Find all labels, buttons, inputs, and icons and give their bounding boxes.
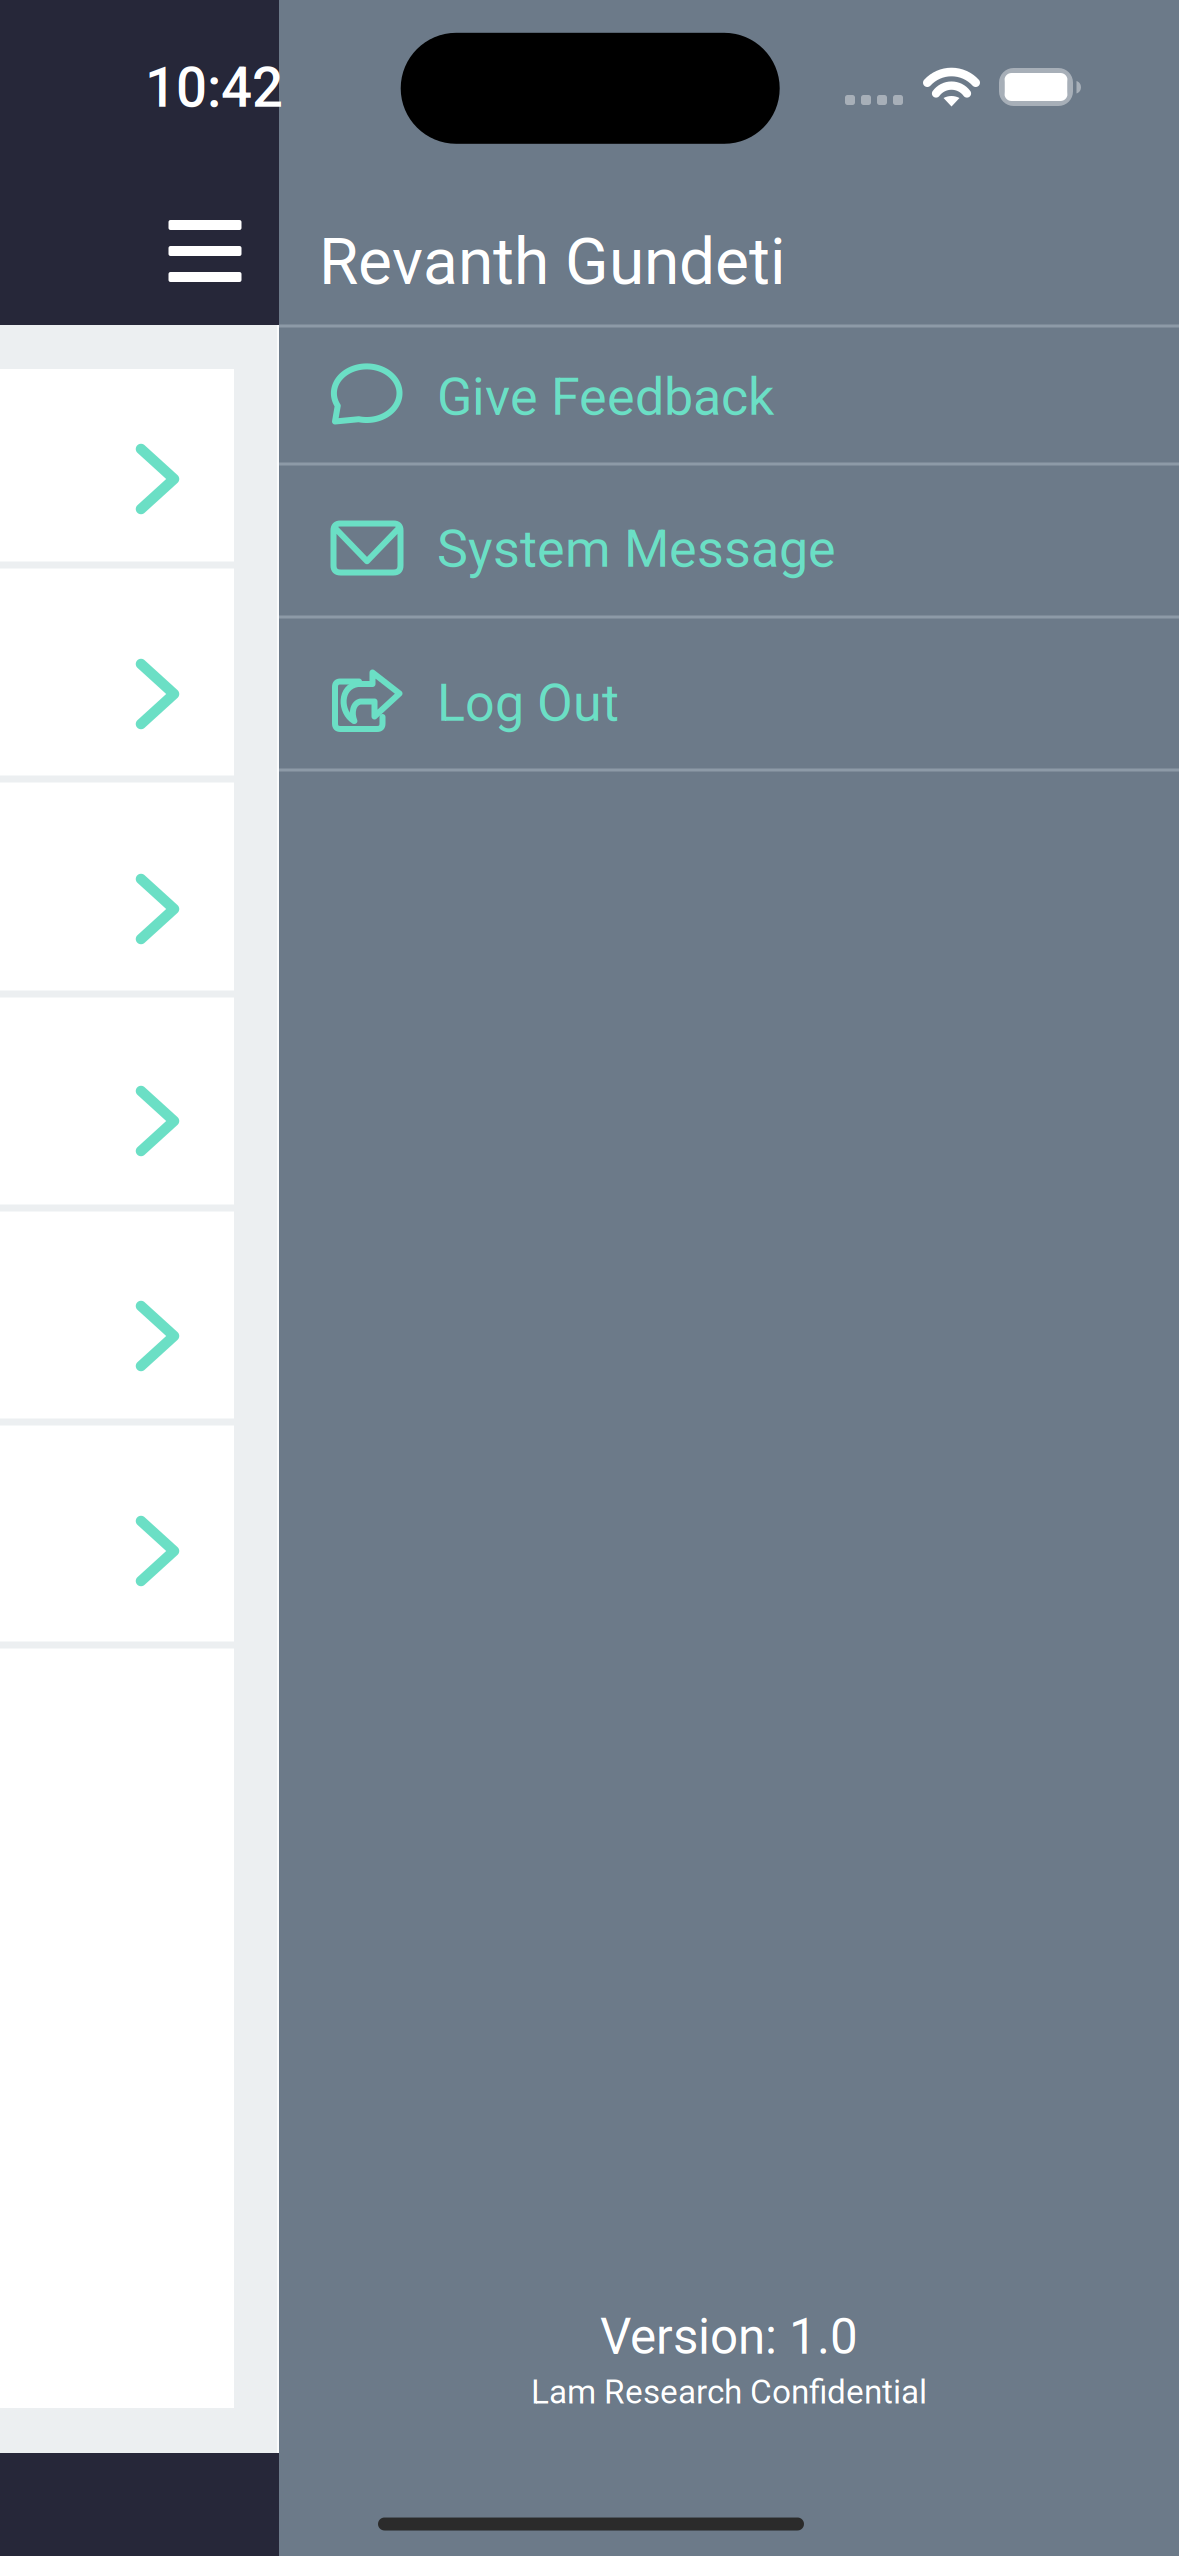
staticText: Revanth Gundeti <box>319 224 786 299</box>
staticText: 10:42 <box>145 56 283 120</box>
staticText: Log Out <box>437 672 619 733</box>
staticText: Lam Research Confidential <box>531 2372 927 2412</box>
button[interactable]: System Message <box>279 464 1179 617</box>
staticText: Give Feedback <box>437 366 774 427</box>
button[interactable]: Log Out <box>279 617 1179 770</box>
button[interactable]: Menu <box>138 184 272 318</box>
button[interactable]: Give Feedback <box>279 326 1179 464</box>
staticText: System Message <box>437 518 836 579</box>
staticText: Version: 1.0 <box>600 2308 858 2366</box>
